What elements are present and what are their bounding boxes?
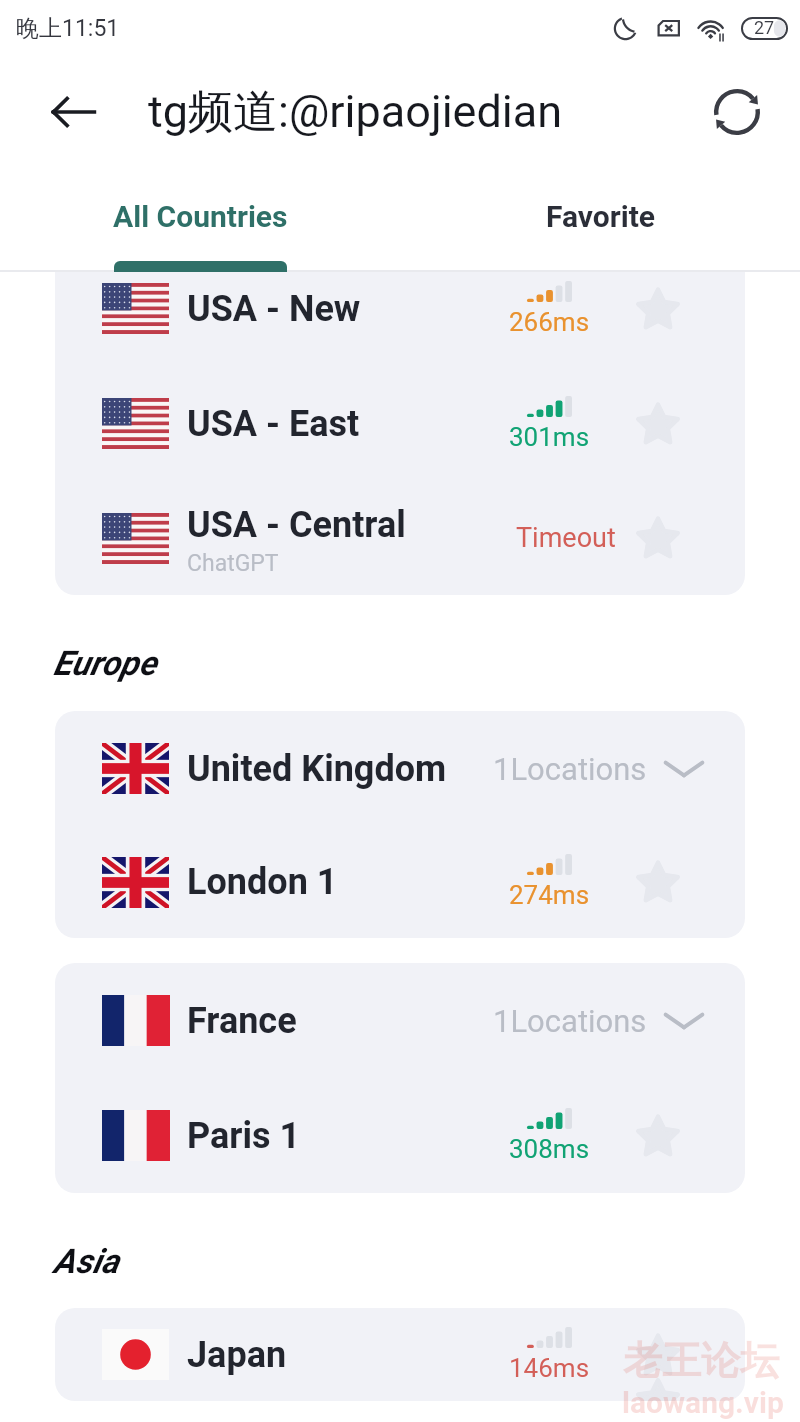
button[interactable]: Favorite bbox=[628, 279, 688, 339]
button[interactable]: USA - East bbox=[55, 366, 745, 481]
button[interactable]: Favorite bbox=[628, 852, 688, 912]
staticText: 146ms bbox=[509, 1353, 590, 1383]
staticText: Paris 1 bbox=[187, 1115, 301, 1157]
staticText: 1Locations bbox=[493, 751, 647, 787]
staticText: Japan bbox=[187, 1334, 287, 1376]
staticText: Timeout bbox=[516, 522, 616, 554]
button[interactable]: Japan bbox=[55, 1308, 745, 1401]
button[interactable]: France bbox=[55, 963, 745, 1078]
button[interactable]: USA - Central bbox=[55, 481, 745, 595]
staticText: USA - Central bbox=[187, 504, 406, 546]
button[interactable]: USA - New bbox=[55, 272, 745, 366]
staticText: 274ms bbox=[509, 880, 590, 910]
staticText: 266ms bbox=[509, 307, 590, 337]
staticText: 301ms bbox=[509, 422, 590, 452]
staticText: France bbox=[187, 1000, 297, 1042]
staticText: Europe bbox=[53, 643, 157, 683]
button[interactable]: Favorite bbox=[628, 508, 688, 568]
staticText: laowang.vip bbox=[622, 1385, 784, 1420]
button[interactable]: Paris 1 bbox=[55, 1078, 745, 1193]
staticText: 308ms bbox=[509, 1134, 590, 1164]
button[interactable]: All Countries bbox=[0, 168, 400, 272]
staticText: USA - East bbox=[187, 403, 360, 445]
button[interactable]: Favorite bbox=[628, 1325, 688, 1385]
staticText: Asia bbox=[53, 1241, 119, 1281]
staticText: USA - New bbox=[187, 288, 361, 330]
staticText: 1Locations bbox=[493, 1003, 647, 1039]
staticText: ChatGPT bbox=[187, 550, 279, 577]
button[interactable]: Favorite bbox=[628, 1106, 688, 1166]
staticText: 27 bbox=[754, 17, 775, 38]
staticText: London 1 bbox=[187, 861, 338, 903]
staticText: United Kingdom bbox=[187, 748, 447, 790]
staticText: 晚上11:51 bbox=[16, 14, 120, 43]
button[interactable]: London 1 bbox=[55, 826, 745, 938]
button[interactable]: Back bbox=[38, 77, 108, 147]
staticText: 老王论坛 bbox=[623, 1336, 779, 1385]
button[interactable]: Refresh bbox=[702, 77, 772, 147]
staticText: tg频道:@ripaojiedian bbox=[148, 84, 563, 141]
button[interactable]: Favorite bbox=[400, 168, 800, 272]
staticText: Favorite bbox=[546, 199, 655, 234]
button[interactable]: United Kingdom bbox=[55, 711, 745, 826]
staticText: All Countries bbox=[113, 199, 288, 234]
button[interactable]: Favorite bbox=[628, 394, 688, 454]
